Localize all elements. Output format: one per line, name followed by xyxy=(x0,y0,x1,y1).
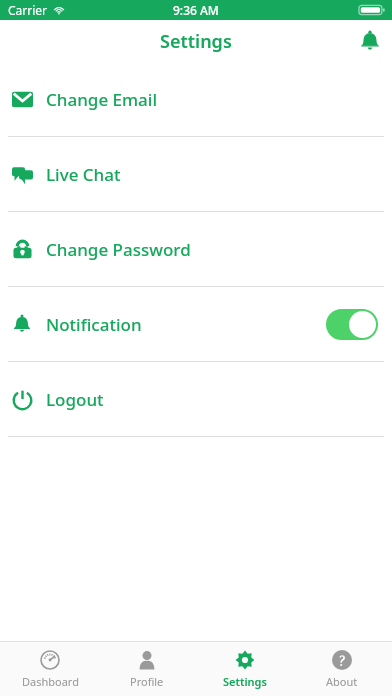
button[interactable]: Live Chat xyxy=(0,137,392,211)
button[interactable]: Dashboard xyxy=(2,642,98,696)
staticText: About xyxy=(326,674,358,689)
staticText: Settings xyxy=(223,674,267,689)
button[interactable]: Profile xyxy=(99,642,195,696)
staticText: Notification xyxy=(46,313,142,336)
staticText: Logout xyxy=(46,388,104,411)
button[interactable]: Change Email xyxy=(0,62,392,136)
button[interactable]: Notification toggle, on xyxy=(326,309,378,340)
button[interactable]: Logout xyxy=(0,362,392,436)
staticText: Profile xyxy=(130,674,164,689)
staticText: 9:36 AM xyxy=(173,2,219,18)
button[interactable]: Notification xyxy=(0,287,392,361)
staticText: Dashboard xyxy=(22,674,79,689)
staticText: Carrier xyxy=(8,2,48,18)
button[interactable]: About xyxy=(294,642,390,696)
button[interactable]: Notifications xyxy=(348,20,392,62)
button[interactable]: Settings xyxy=(197,642,293,696)
staticText: Live Chat xyxy=(46,163,121,186)
staticText: Change Email xyxy=(46,88,158,111)
staticText: Change Password xyxy=(46,238,191,261)
button[interactable]: Change Password xyxy=(0,212,392,286)
staticText: Settings xyxy=(160,29,232,54)
